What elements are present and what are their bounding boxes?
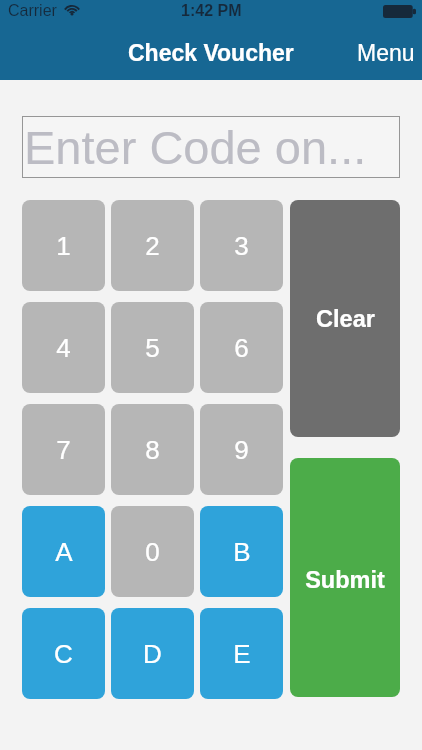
button[interactable]: 6 xyxy=(200,302,283,393)
staticText: Carrier xyxy=(8,2,57,20)
button[interactable]: 8 xyxy=(111,404,194,495)
staticText: 7 xyxy=(56,435,71,464)
button[interactable]: 7 xyxy=(22,404,105,495)
staticText: 8 xyxy=(145,435,160,464)
button[interactable]: 1 xyxy=(22,200,105,291)
button[interactable]: D xyxy=(111,608,194,699)
staticText: 4 xyxy=(56,333,71,362)
button[interactable]: E xyxy=(200,608,283,699)
button[interactable]: B xyxy=(200,506,283,597)
staticText: 6 xyxy=(234,333,249,362)
button[interactable]: 9 xyxy=(200,404,283,495)
staticText: 9 xyxy=(234,435,249,464)
button[interactable]: 4 xyxy=(22,302,105,393)
other: Battery full xyxy=(383,5,416,18)
other: Wi-Fi signal xyxy=(63,5,81,17)
staticText: B xyxy=(233,537,251,566)
button[interactable]: 2 xyxy=(111,200,194,291)
button[interactable]: Enter Code on... xyxy=(22,116,400,178)
staticText: 3 xyxy=(234,231,249,260)
button[interactable]: Menu xyxy=(343,34,422,72)
button[interactable]: Submit xyxy=(290,458,400,697)
staticText: D xyxy=(143,639,162,668)
staticText: 2 xyxy=(145,231,160,260)
staticText: 5 xyxy=(145,333,160,362)
staticText: Clear xyxy=(316,306,375,332)
staticText: Submit xyxy=(305,567,385,593)
button[interactable]: A xyxy=(22,506,105,597)
staticText: 0 xyxy=(145,537,160,566)
staticText: Check Voucher xyxy=(128,40,294,66)
staticText: E xyxy=(233,639,251,668)
staticText: 1:42 PM xyxy=(181,2,242,20)
staticText: Enter Code on... xyxy=(24,121,367,174)
staticText: 1 xyxy=(56,231,71,260)
staticText: C xyxy=(54,639,73,668)
button[interactable]: 3 xyxy=(200,200,283,291)
button[interactable]: 5 xyxy=(111,302,194,393)
staticText: Menu xyxy=(357,40,415,66)
button[interactable]: C xyxy=(22,608,105,699)
staticText: A xyxy=(55,537,73,566)
button[interactable]: 0 xyxy=(111,506,194,597)
button[interactable]: Clear xyxy=(290,200,400,437)
